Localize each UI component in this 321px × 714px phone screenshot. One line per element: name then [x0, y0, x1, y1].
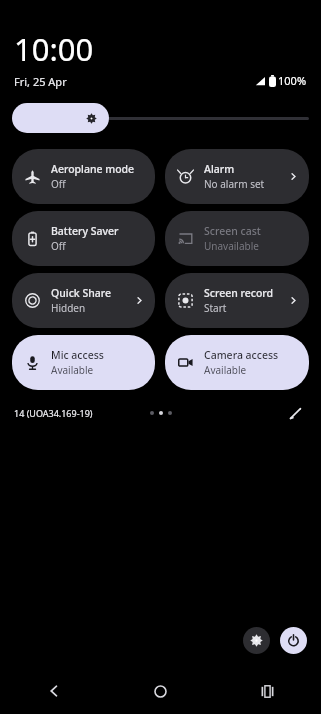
staticText: Aeroplane mode: [51, 162, 135, 176]
staticText: Screen cast: [204, 224, 261, 238]
staticText: 10:00: [14, 28, 94, 70]
staticText: Battery Saver: [51, 224, 119, 238]
staticText: 100%: [278, 73, 307, 88]
staticText: Unavailable: [204, 239, 259, 253]
button[interactable]: Home: [107, 672, 214, 710]
staticText: Alarm: [204, 162, 235, 176]
button[interactable]: Camera access: [165, 335, 309, 390]
staticText: Hidden: [51, 301, 86, 315]
staticText: Off: [51, 177, 66, 191]
button[interactable]: Battery Saver: [12, 211, 155, 266]
button[interactable]: Recent apps: [214, 672, 321, 710]
button[interactable]: Power: [280, 627, 307, 654]
button[interactable]: Alarm: [165, 149, 309, 204]
staticText: Available: [204, 363, 247, 377]
button[interactable]: Brightness: [12, 103, 309, 133]
button[interactable]: Quick Share: [12, 273, 155, 328]
button[interactable]: Screen cast: [165, 211, 309, 266]
staticText: No alarm set: [204, 177, 265, 191]
button[interactable]: Back: [0, 672, 107, 710]
staticText: Available: [51, 363, 94, 377]
staticText: Quick Share: [51, 286, 112, 300]
button[interactable]: Mic access: [12, 335, 155, 390]
staticText: Fri, 25 Apr: [14, 74, 67, 89]
button[interactable]: Edit tiles: [283, 401, 307, 425]
button[interactable]: Aeroplane mode: [12, 149, 155, 204]
staticText: Mic access: [51, 348, 104, 362]
staticText: Screen record: [204, 286, 274, 300]
button[interactable]: Screen record: [165, 273, 309, 328]
staticText: Camera access: [204, 348, 279, 362]
staticText: 14 (UOA34.169-19): [14, 407, 93, 419]
staticText: Start: [204, 301, 227, 315]
button[interactable]: Settings: [243, 627, 270, 654]
staticText: Off: [51, 239, 66, 253]
